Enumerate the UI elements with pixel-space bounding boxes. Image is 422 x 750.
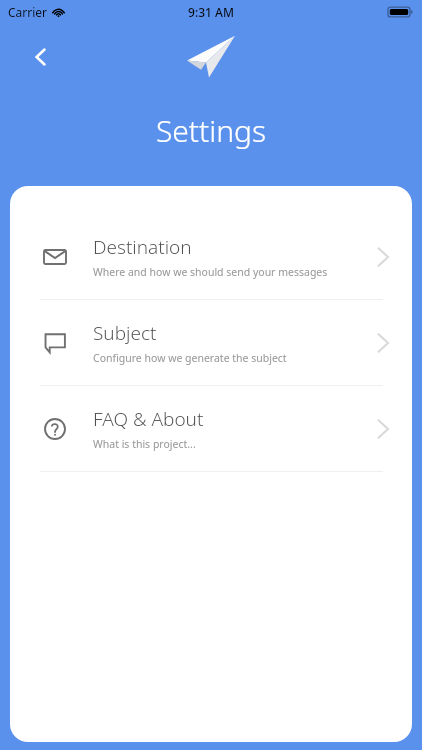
staticText: What is this project... <box>93 437 196 451</box>
staticText: 9:31 AM <box>188 4 234 20</box>
staticText: Configure how we generate the subject <box>93 351 287 365</box>
button[interactable]: Subject <box>10 300 412 385</box>
staticText: Subject <box>93 320 157 346</box>
button[interactable]: Back <box>20 36 62 78</box>
staticText: Where and how we should send your messag… <box>93 265 328 279</box>
button[interactable]: Destination <box>10 214 412 299</box>
staticText: Carrier <box>8 4 48 20</box>
staticText: Destination <box>93 234 192 260</box>
button[interactable]: FAQ & About <box>10 386 412 471</box>
staticText: FAQ & About <box>93 406 204 432</box>
staticText: Settings <box>0 110 422 151</box>
